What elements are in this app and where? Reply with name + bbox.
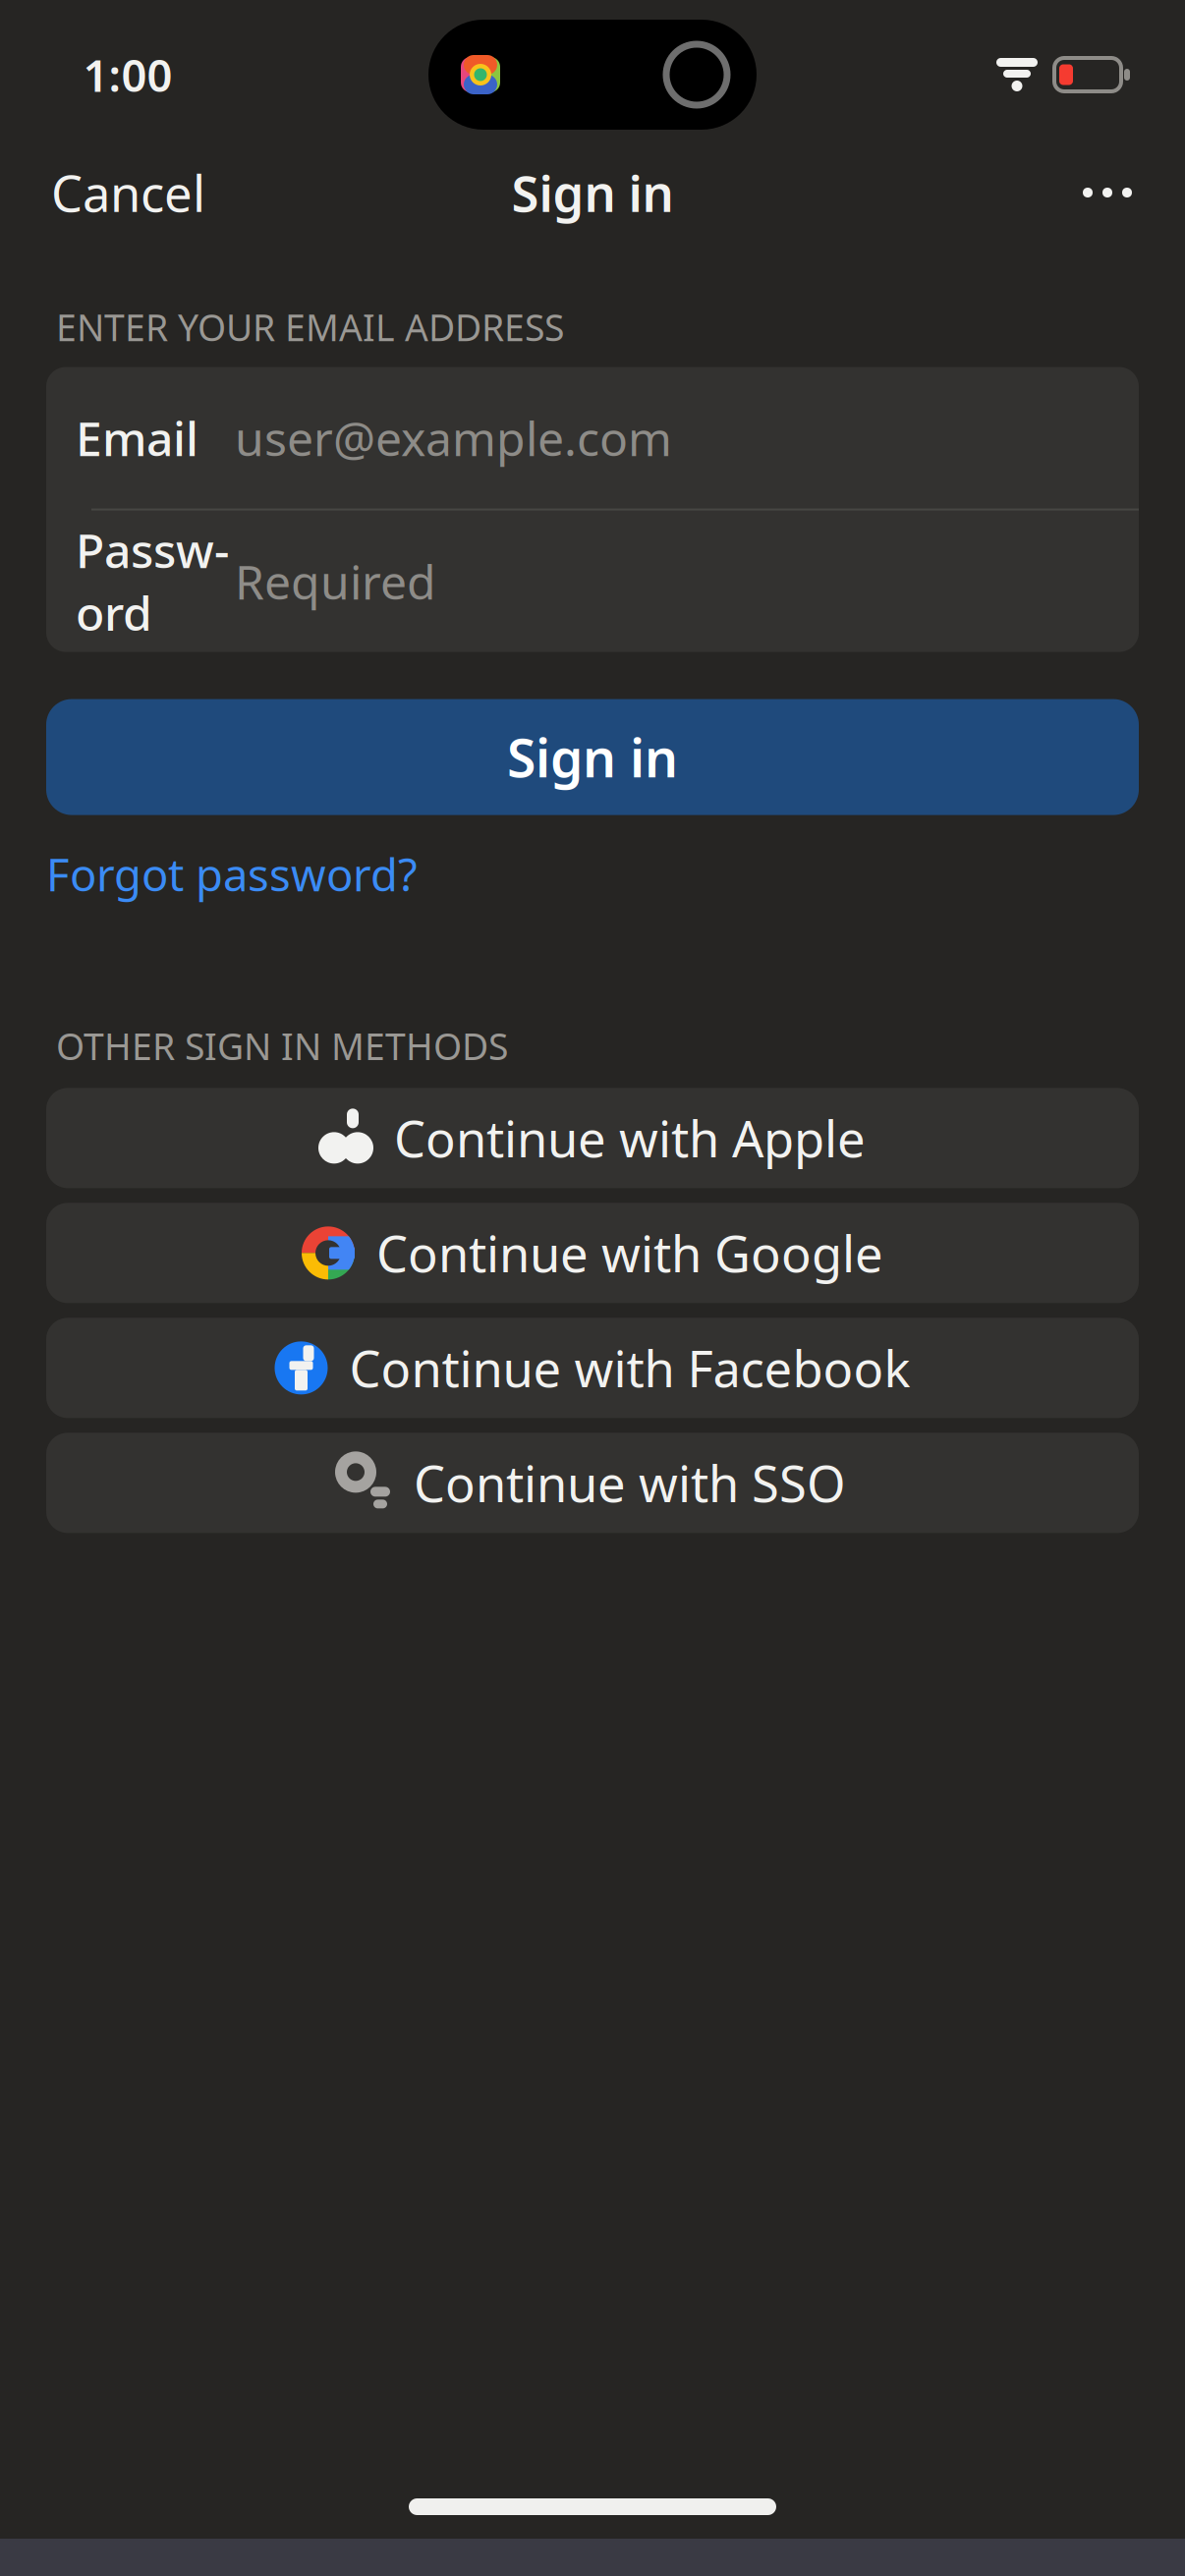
button[interactable]: Continue with Apple — [46, 1088, 1139, 1188]
button[interactable]: Continue with SSO — [46, 1433, 1139, 1533]
staticText: Continue with Apple — [394, 1105, 866, 1171]
staticText: Continue with Facebook — [349, 1335, 910, 1401]
staticText: Email — [76, 406, 198, 469]
staticText: user@example.com — [235, 406, 672, 469]
staticText: Required — [235, 550, 436, 612]
staticText: Sign in — [511, 160, 674, 226]
staticText: Continue with Google — [376, 1220, 883, 1286]
staticText: Sign in — [507, 722, 678, 792]
button[interactable]: More options — [1059, 162, 1156, 223]
button[interactable]: Forgot password? — [46, 837, 418, 912]
staticText: Cancel — [51, 160, 205, 226]
button[interactable]: Email — [46, 367, 1139, 509]
button[interactable]: Sign in — [46, 699, 1139, 815]
staticText: ENTER YOUR EMAIL ADDRESS — [56, 303, 564, 351]
button[interactable]: Cancel — [29, 144, 227, 241]
staticText: OTHER SIGN IN METHODS — [56, 1022, 508, 1070]
staticText: Password — [76, 519, 229, 644]
button[interactable]: Continue with Facebook — [46, 1318, 1139, 1418]
staticText: 1:00 — [83, 45, 172, 104]
staticText: Continue with SSO — [414, 1450, 846, 1516]
button[interactable]: Password — [46, 510, 1139, 652]
staticText: Forgot password? — [46, 845, 418, 904]
button[interactable]: Continue with Google — [46, 1203, 1139, 1303]
